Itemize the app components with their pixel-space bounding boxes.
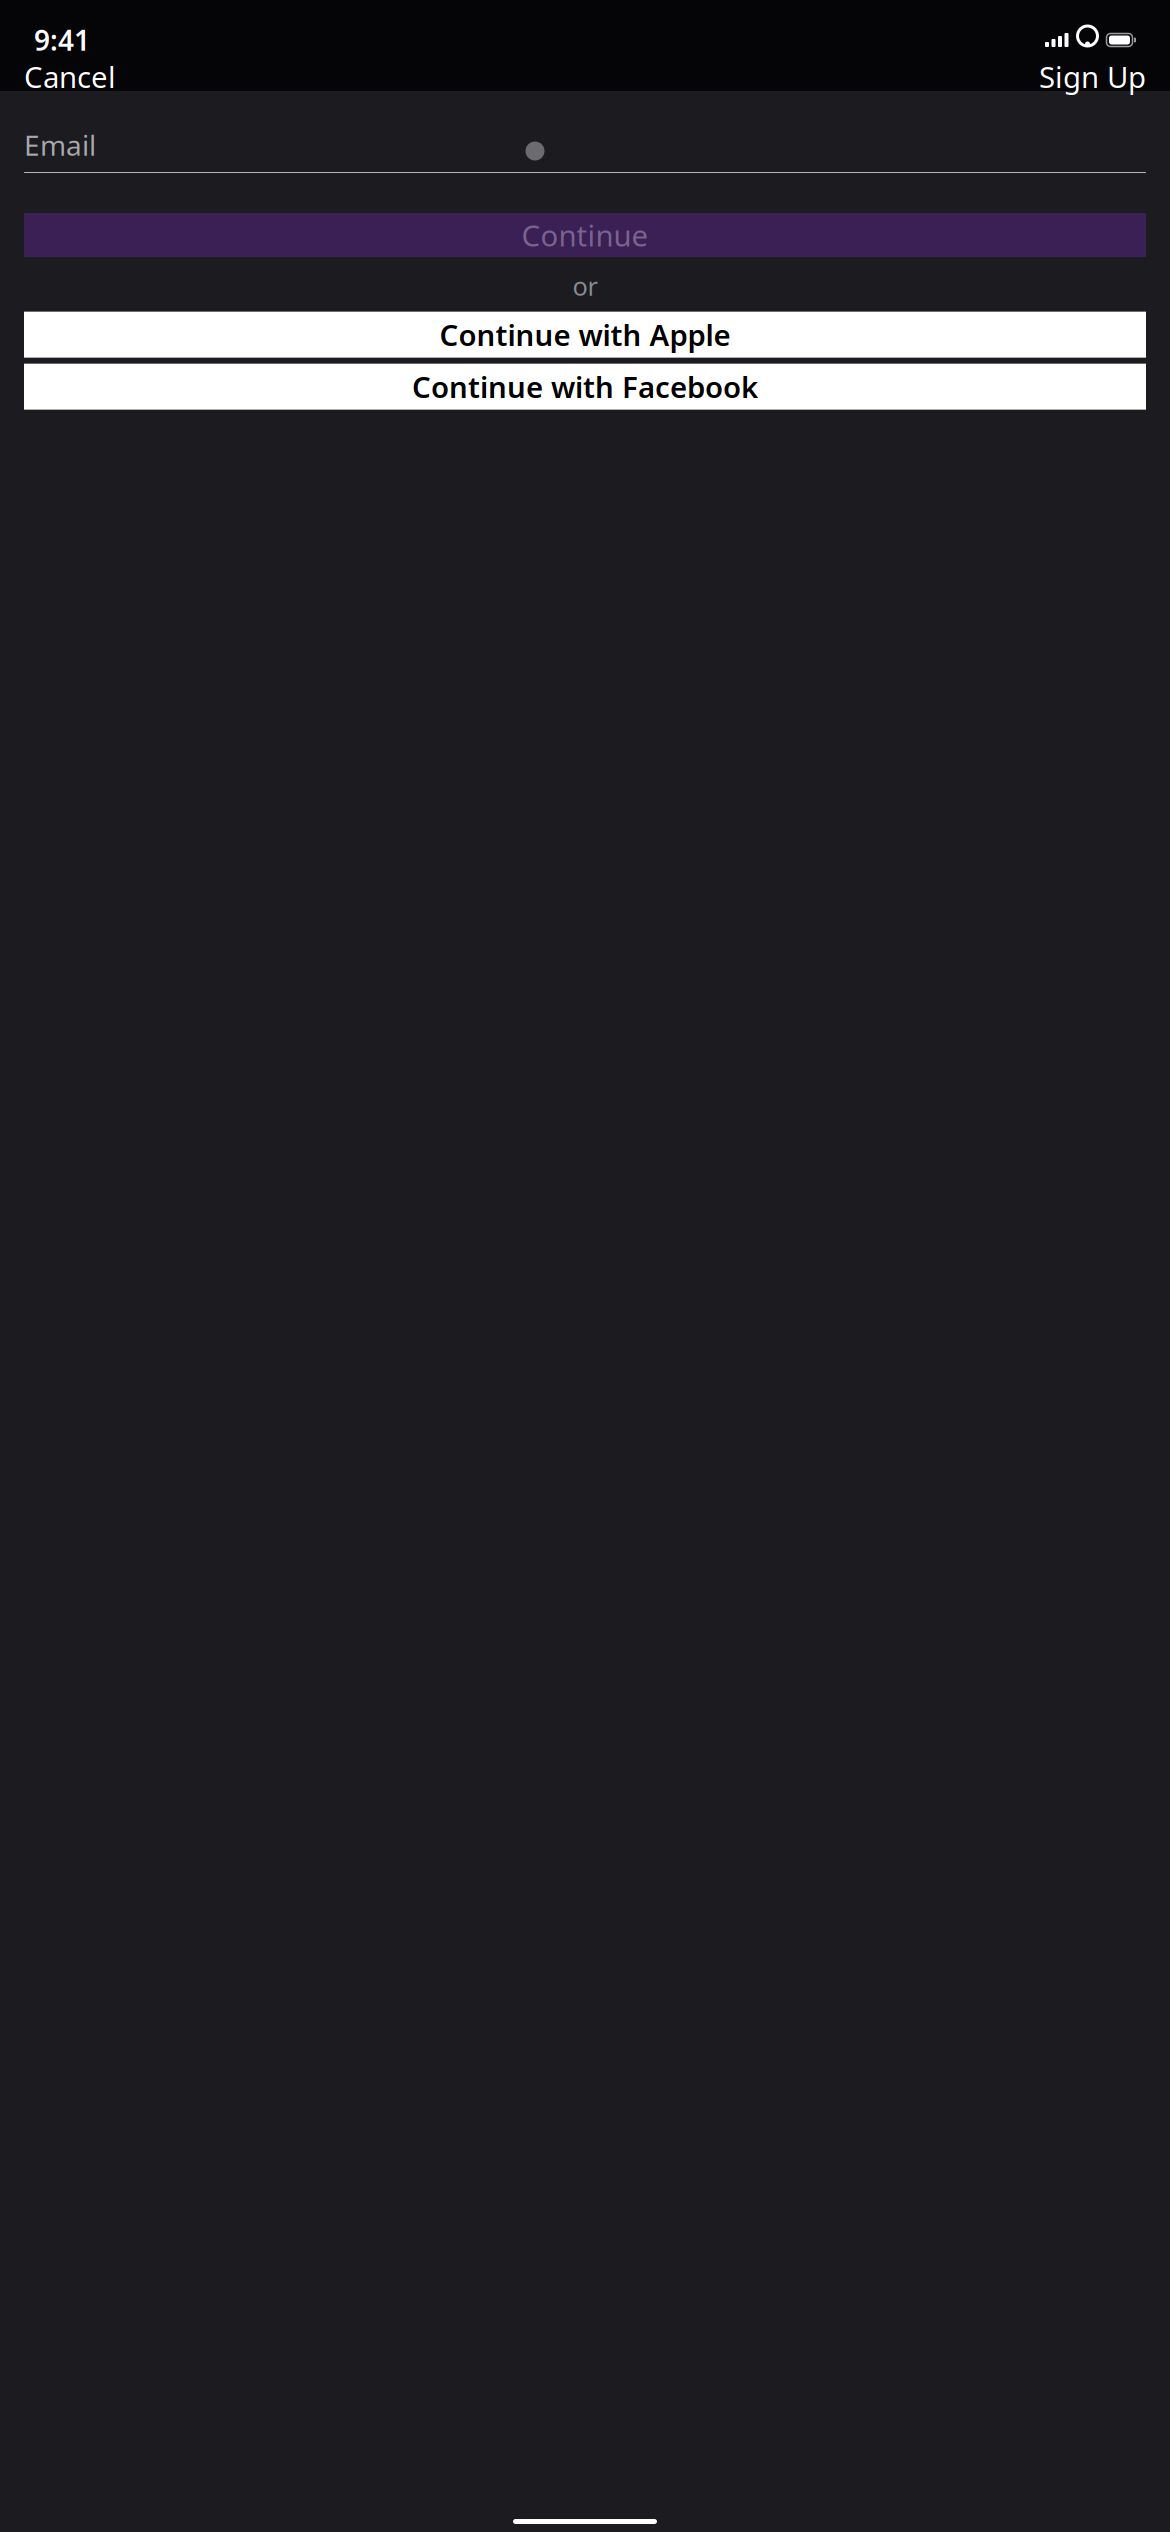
staticText: or	[572, 269, 597, 303]
button[interactable]: Cancel	[14, 49, 126, 104]
staticText: Sign Up	[1039, 57, 1146, 96]
button[interactable]: Sign Up	[1029, 49, 1156, 104]
staticText: 9:41	[34, 21, 90, 59]
staticText: Continue with Apple	[439, 315, 730, 354]
button[interactable]: Continue	[24, 213, 1146, 257]
button[interactable]: Continue with Apple	[24, 312, 1146, 358]
staticText: Continue	[521, 215, 648, 254]
staticText: Continue with Facebook	[412, 367, 758, 406]
staticText: Cancel	[24, 57, 116, 96]
button[interactable]: Continue with Facebook	[24, 364, 1146, 410]
staticText: Email	[24, 126, 96, 164]
